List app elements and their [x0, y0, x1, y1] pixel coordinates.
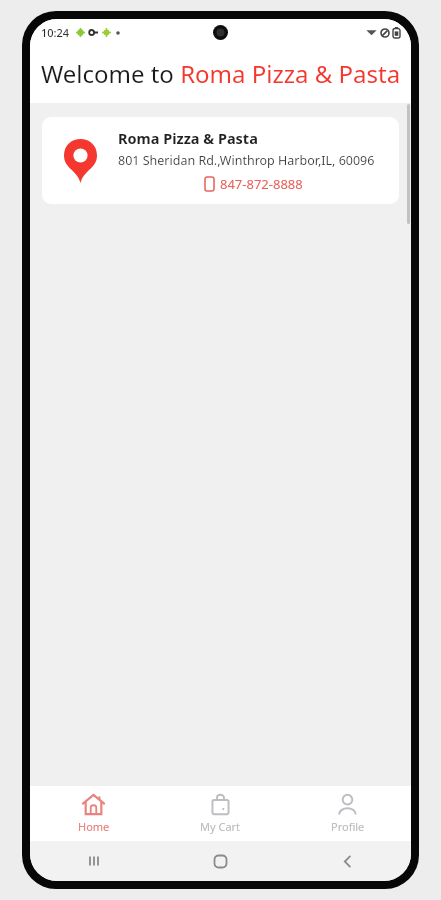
staticText: 801 Sheridan Rd.,Winthrop Harbor,IL, 600… — [118, 152, 375, 169]
other: Home — [82, 793, 105, 816]
other: Back — [340, 854, 355, 869]
button[interactable]: My Cart — [157, 786, 284, 841]
other: Home — [213, 854, 228, 869]
staticText: Roma Pizza & Pasta — [118, 128, 258, 148]
other: My Cart — [209, 793, 232, 816]
button[interactable]: Home — [30, 786, 157, 841]
other: Profile — [336, 793, 359, 816]
button[interactable]: Home — [157, 841, 284, 881]
button[interactable]: 847-872-8888 — [202, 174, 306, 194]
button[interactable]: Profile — [284, 786, 411, 841]
button[interactable]: Back — [284, 841, 411, 881]
button[interactable]: Roma Pizza & Pasta — [42, 117, 399, 204]
button[interactable]: Recent apps — [30, 841, 157, 881]
staticText: Welcome to Roma Pizza & Pasta — [40, 57, 401, 90]
other: Recent apps — [86, 853, 102, 869]
staticText: My Cart — [200, 819, 241, 834]
staticText: 10:24 — [41, 25, 70, 40]
staticText: Profile — [331, 819, 365, 834]
staticText: 847-872-8888 — [220, 175, 303, 193]
staticText: Home — [78, 819, 110, 834]
